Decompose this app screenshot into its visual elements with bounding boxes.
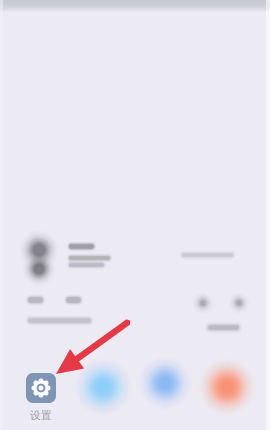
staticText: 设置 — [30, 409, 52, 422]
button[interactable]: 设置 — [13, 373, 69, 422]
